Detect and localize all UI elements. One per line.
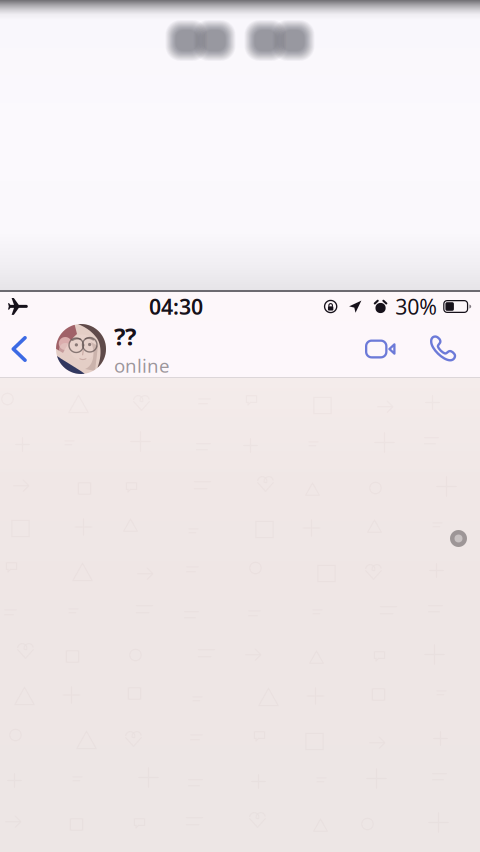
button[interactable]: ?? [56,321,349,377]
staticText: 04:30 [149,292,203,321]
staticText: online [114,353,170,378]
button[interactable]: Back [0,321,56,377]
staticText: 30% [395,292,437,321]
button[interactable]: Video call [349,321,412,377]
button[interactable]: Voice call [412,321,480,377]
staticText: ?? [114,320,136,352]
